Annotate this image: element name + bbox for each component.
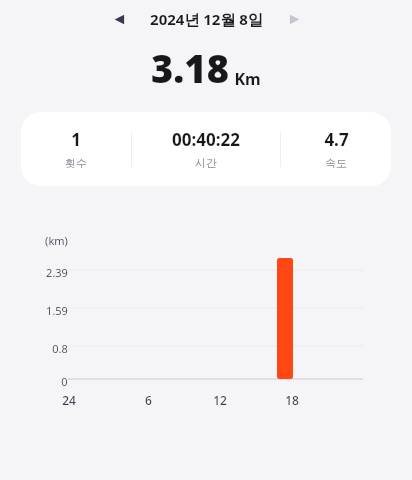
staticText: 24	[62, 392, 76, 408]
button[interactable]: 00:40:22	[132, 112, 280, 186]
staticText: 00:40:22	[172, 128, 240, 151]
staticText: 속도	[325, 156, 347, 170]
button[interactable]: Next day	[279, 4, 309, 34]
staticText: 4.7	[324, 128, 349, 151]
staticText: 0.8	[52, 341, 68, 356]
staticText: 시간	[195, 156, 217, 170]
staticText: 2.39	[46, 265, 68, 280]
staticText: (km)	[45, 233, 68, 248]
staticText: 1.59	[46, 303, 68, 318]
staticText: 0	[61, 374, 68, 389]
staticText: 횟수	[65, 156, 87, 170]
staticText: 1	[71, 128, 81, 151]
staticText: 2024년 12월 8일	[150, 9, 263, 29]
staticText: 18	[285, 392, 299, 408]
button[interactable]: 4.7	[281, 112, 391, 186]
button[interactable]: Previous day	[104, 4, 134, 34]
staticText: 3.18	[151, 42, 229, 94]
staticText: 6	[145, 392, 152, 408]
staticText: Km	[234, 68, 261, 90]
button[interactable]: 1	[21, 112, 131, 186]
button[interactable]: 1	[21, 112, 391, 186]
staticText: 12	[213, 392, 227, 408]
